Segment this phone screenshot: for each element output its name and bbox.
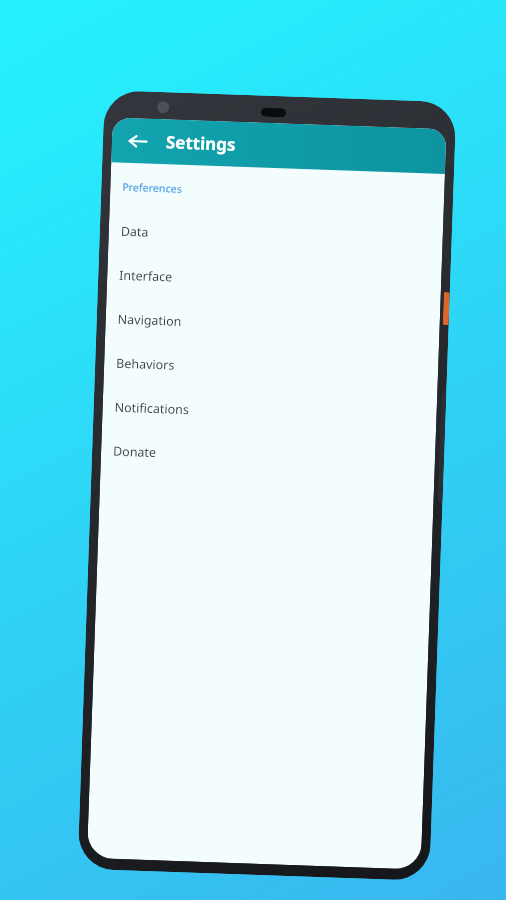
button[interactable]: Notifications — [102, 384, 437, 440]
staticText: Behaviors — [116, 355, 175, 374]
staticText: Data — [120, 223, 149, 241]
button[interactable]: Data — [108, 208, 443, 264]
button[interactable]: Interface — [106, 252, 442, 308]
staticText: Interface — [119, 267, 174, 286]
button[interactable]: Back — [120, 124, 156, 159]
button[interactable]: Donate — [100, 428, 436, 484]
staticText: Donate — [113, 443, 156, 461]
staticText: Settings — [165, 130, 236, 156]
button[interactable]: Navigation — [105, 296, 440, 352]
staticText: Notifications — [114, 399, 190, 418]
staticText: Navigation — [117, 311, 182, 330]
staticText: Preferences — [122, 180, 183, 196]
button[interactable]: Behaviors — [103, 340, 439, 396]
